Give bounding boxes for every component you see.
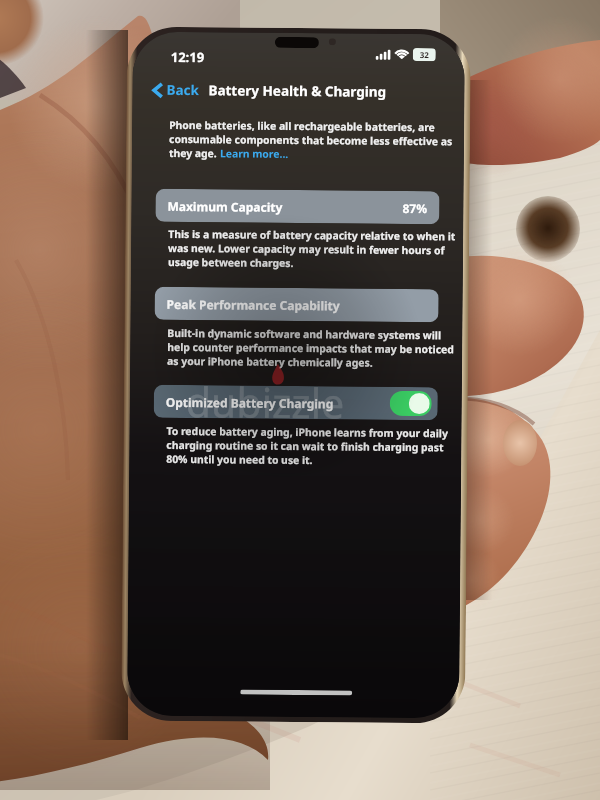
staticText: Back <box>166 81 200 99</box>
staticText: they age. <box>169 146 220 160</box>
staticText: 87% <box>402 200 427 216</box>
staticText: To reduce battery aging, iPhone learns f… <box>166 424 448 440</box>
staticText: consumable components that become less e… <box>169 132 453 148</box>
staticText: dubizzle <box>185 373 345 430</box>
button[interactable]: Learn more... <box>220 146 289 161</box>
button[interactable]: Peak Performance Capability <box>154 287 439 322</box>
staticText: This is a measure of battery capacity re… <box>168 227 456 243</box>
button[interactable]: Maximum Capacity <box>155 189 440 224</box>
staticText: help counter performance impacts that ma… <box>167 340 454 356</box>
staticText: 32 <box>420 49 430 60</box>
staticText: as your iPhone battery chemically ages. <box>167 354 373 370</box>
staticText: Built-in dynamic software and hardware s… <box>167 326 441 342</box>
staticText: Maximum Capacity <box>167 198 282 215</box>
button[interactable]: Back <box>152 79 200 101</box>
staticText: Peak Performance Capability <box>166 296 341 313</box>
staticText: 12:19 <box>171 48 205 66</box>
staticText: usage between charges. <box>168 255 294 270</box>
button[interactable]: Optimized Battery Charging <box>154 385 438 420</box>
staticText: Phone batteries, like all rechargeable b… <box>169 118 435 134</box>
staticText: charging routine so it can wait to finis… <box>166 438 444 454</box>
staticText: Optimized Battery Charging <box>166 394 334 411</box>
staticText: was new. Lower capacity may result in fe… <box>168 241 445 257</box>
staticText: 80% until you need to use it. <box>166 452 313 467</box>
button[interactable]: Optimized Battery Charging toggle <box>390 391 432 416</box>
staticText: Battery Health & Charging <box>208 81 387 101</box>
